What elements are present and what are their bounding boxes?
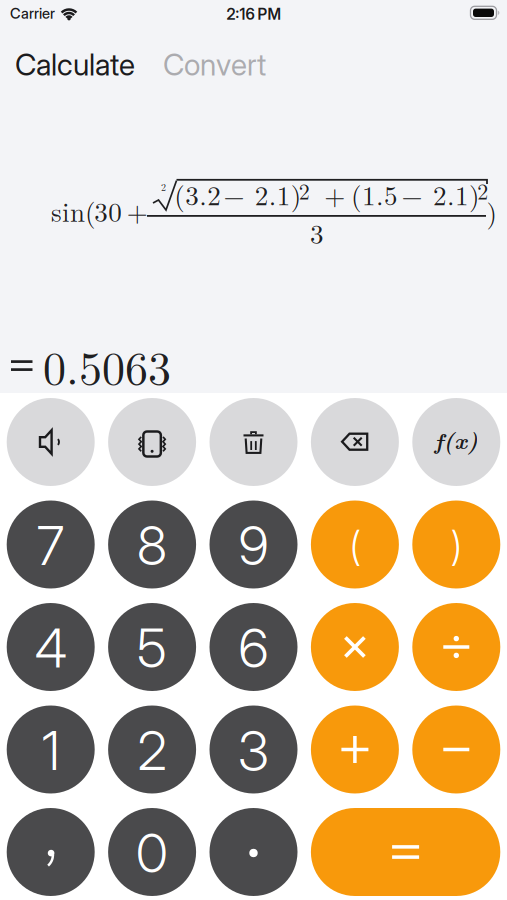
staticText: 2.1)	[255, 175, 302, 213]
staticText: Convert	[163, 47, 266, 83]
staticText: 2	[161, 180, 166, 194]
staticText: 4	[35, 616, 67, 680]
staticText: 8	[137, 513, 167, 578]
staticText: +	[127, 191, 148, 229]
staticText: 0.5063	[43, 333, 171, 398]
staticText: 2	[477, 175, 488, 206]
staticText: )	[451, 521, 462, 570]
staticText: 30	[94, 191, 122, 229]
staticText: 1	[42, 718, 60, 783]
staticText: 2.1)	[433, 175, 480, 213]
staticText: 3	[310, 213, 324, 251]
staticText: 2	[138, 718, 167, 783]
staticText: 3	[238, 718, 269, 783]
staticText: 6	[238, 616, 268, 680]
staticText: −	[401, 175, 422, 213]
staticText: (1.5	[351, 175, 398, 213]
staticText: Calculate	[15, 47, 135, 83]
staticText: f(x)	[434, 423, 478, 456]
staticText: −	[223, 175, 244, 213]
staticText: 5	[137, 616, 167, 680]
staticText: )	[486, 192, 497, 230]
staticText: Carrier	[10, 4, 55, 22]
staticText: 0	[136, 821, 168, 885]
staticText: 7	[37, 513, 65, 578]
staticText: sin(	[51, 191, 96, 229]
staticText: +	[324, 175, 345, 213]
staticText: 9	[238, 513, 268, 578]
staticText: (	[349, 521, 360, 570]
staticText: (3.2	[174, 175, 221, 213]
staticText: 2:16 PM	[226, 5, 281, 23]
staticText: 2	[299, 175, 310, 206]
